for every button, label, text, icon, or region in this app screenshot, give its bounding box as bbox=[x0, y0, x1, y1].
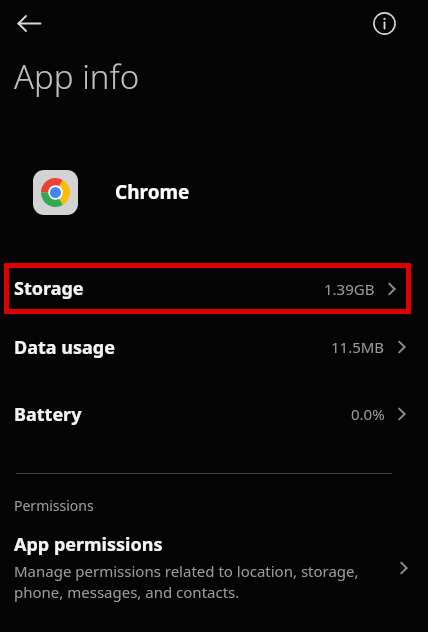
staticText: Storage bbox=[14, 276, 84, 301]
staticText: App info bbox=[14, 54, 140, 99]
staticText: 11.5MB bbox=[331, 337, 385, 357]
staticText: Manage permissions related to location, … bbox=[14, 561, 359, 603]
button[interactable]: Chrome bbox=[0, 169, 428, 215]
staticText: App permissions bbox=[14, 532, 163, 557]
button[interactable]: Back bbox=[14, 8, 44, 38]
button[interactable]: App info details bbox=[370, 9, 398, 37]
button[interactable]: App permissions bbox=[0, 532, 428, 603]
button[interactable]: Battery bbox=[0, 402, 428, 426]
staticText: Chrome bbox=[115, 179, 190, 205]
button[interactable]: Storage bbox=[4, 263, 411, 314]
staticText: Permissions bbox=[14, 496, 94, 515]
staticText: Battery bbox=[14, 402, 82, 426]
staticText: 0.0% bbox=[351, 404, 385, 424]
staticText: Data usage bbox=[14, 335, 115, 359]
button[interactable]: Data usage bbox=[0, 335, 428, 359]
staticText: 1.39GB bbox=[324, 279, 375, 299]
